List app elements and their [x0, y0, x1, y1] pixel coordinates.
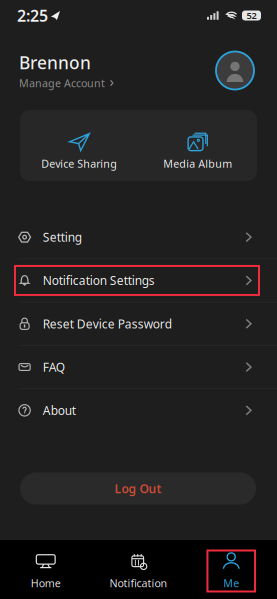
staticText: Brennon — [19, 51, 91, 74]
button[interactable]: Reset Device Password — [0, 303, 277, 345]
staticText: About — [43, 402, 76, 418]
button[interactable]: Setting — [0, 216, 277, 258]
staticText: Reset Device Password — [43, 316, 172, 332]
button[interactable]: Me — [207, 548, 255, 590]
staticText: Manage Account — [19, 76, 105, 90]
button[interactable]: About — [0, 389, 277, 431]
staticText: Me — [223, 576, 239, 590]
button[interactable]: Device Sharing — [20, 110, 138, 181]
staticText: 52 — [246, 9, 256, 22]
button[interactable]: FAQ — [0, 346, 277, 388]
button[interactable]: Home — [22, 548, 69, 590]
staticText: FAQ — [43, 359, 65, 375]
staticText: Media Album — [163, 156, 232, 171]
button[interactable]: Notification — [115, 548, 162, 590]
staticText: Home — [31, 576, 61, 590]
staticText: Notification — [109, 576, 167, 590]
staticText: Setting — [43, 229, 82, 245]
staticText: Device Sharing — [41, 156, 117, 171]
button[interactable]: Manage Account — [19, 76, 113, 90]
staticText: 2:25 — [17, 5, 48, 26]
staticText: Notification Settings — [43, 272, 155, 288]
button[interactable]: Log Out — [20, 472, 256, 504]
button[interactable]: Media Album — [138, 110, 257, 181]
button[interactable]: Notification Settings — [0, 259, 277, 302]
staticText: Log Out — [114, 480, 161, 496]
button[interactable]: Profile photo — [216, 51, 254, 89]
